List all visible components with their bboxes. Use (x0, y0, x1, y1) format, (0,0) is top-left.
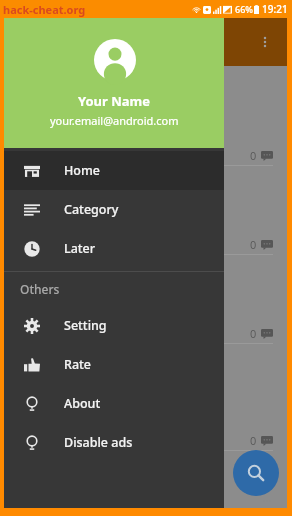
staticText: Others (20, 281, 60, 297)
button[interactable]: Your Name (4, 18, 224, 148)
staticText: 66% (235, 3, 253, 15)
staticText: Setting (64, 317, 107, 334)
button[interactable]: PAYDAY LOANS TODAY (4, 66, 287, 173)
button[interactable]: Search (233, 450, 279, 496)
staticText: Payday loans service (18, 398, 130, 414)
staticText: Your Name (78, 92, 151, 110)
staticText: Payday loan option (18, 291, 122, 307)
button[interactable]: LOAN RESTRICTIONS (4, 262, 287, 351)
staticText: 19:21 (262, 2, 288, 16)
staticText: GETTING IN A (18, 358, 107, 376)
staticText: your.email@android.com (50, 113, 179, 128)
staticText: A payday cash loan (18, 202, 122, 218)
staticText: 0 (250, 326, 257, 341)
staticText: to help temporary (18, 307, 116, 323)
button[interactable]: GETTING IN A (4, 351, 287, 458)
staticText: About (64, 395, 101, 412)
staticText: Home (64, 162, 101, 179)
staticText: LOAN RESTRICTIONS (18, 269, 151, 287)
staticText: Rate (64, 356, 92, 373)
staticText: NEED FAST CASH (18, 180, 125, 198)
staticText: Category (64, 201, 119, 218)
staticText: 0 (250, 148, 257, 163)
button[interactable]: More options (251, 28, 279, 56)
button[interactable]: NEED FAST CASH (4, 173, 287, 262)
button[interactable]: PAYDAY JUST PAY (4, 458, 287, 508)
staticText: 0 (250, 237, 257, 252)
staticText: A payday loan that is (18, 113, 130, 129)
button[interactable]: Disable ads (4, 423, 224, 462)
staticText: Disable ads (64, 434, 133, 451)
staticText: PAYDAY LOANS TODAY (18, 73, 162, 91)
staticText: 0 (250, 433, 257, 448)
button[interactable]: About (4, 384, 224, 423)
button[interactable]: Category (4, 190, 224, 229)
button[interactable]: Rate (4, 345, 224, 384)
button[interactable]: Setting (4, 306, 224, 345)
button[interactable]: Home (4, 151, 224, 190)
button[interactable]: Later (4, 229, 224, 268)
staticText: Later (64, 240, 96, 257)
staticText: hack-cheat.org (3, 2, 86, 17)
